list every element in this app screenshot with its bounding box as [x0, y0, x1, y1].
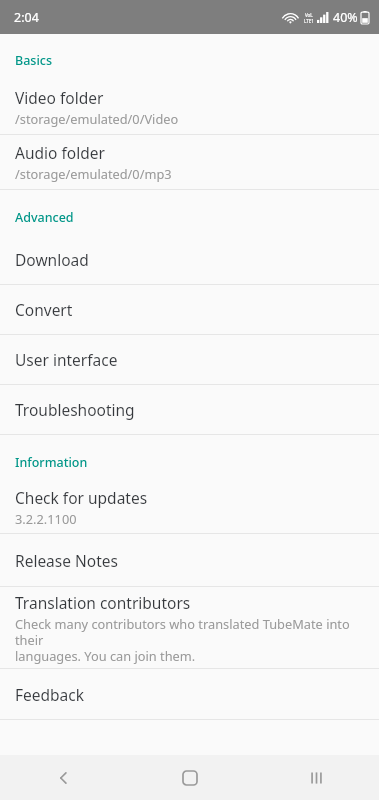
staticText: /storage/emulated/0/mp3 — [15, 165, 172, 182]
button[interactable]: Home — [127, 755, 253, 800]
staticText: Information — [15, 454, 88, 471]
button[interactable]: Back — [0, 755, 127, 800]
button[interactable]: Video folder — [0, 79, 379, 134]
staticText: Video folder — [15, 87, 104, 108]
staticText: Audio folder — [15, 142, 105, 163]
staticText: VoL — [305, 12, 313, 18]
staticText: Convert — [15, 299, 73, 320]
staticText: Release Notes — [15, 550, 118, 571]
button[interactable]: Convert — [0, 285, 379, 334]
button[interactable]: Check for updates — [0, 480, 379, 533]
staticText: Feedback — [15, 684, 85, 705]
button[interactable]: Translation contributors — [0, 587, 379, 668]
staticText: 2:04 — [14, 9, 39, 26]
staticText: Check many contributors who translated T… — [15, 615, 365, 664]
staticText: Advanced — [15, 209, 74, 226]
staticText: Translation contributors — [15, 592, 191, 613]
staticText: Troubleshooting — [15, 399, 135, 420]
staticText: Download — [15, 249, 89, 270]
staticText: LTE1 — [304, 18, 314, 24]
button[interactable]: Troubleshooting — [0, 385, 379, 434]
staticText: Check for updates — [15, 487, 148, 508]
button[interactable]: Release Notes — [0, 534, 379, 586]
button[interactable]: Audio folder — [0, 135, 379, 189]
button[interactable]: Feedback — [0, 669, 379, 719]
button[interactable]: Download — [0, 235, 379, 284]
staticText: /storage/emulated/0/Video — [15, 110, 179, 127]
staticText: User interface — [15, 349, 118, 370]
staticText: 3.2.2.1100 — [15, 510, 77, 527]
button[interactable]: Recent apps — [253, 755, 379, 800]
staticText: 40% — [333, 9, 358, 26]
staticText: Basics — [15, 52, 52, 69]
button[interactable]: User interface — [0, 335, 379, 384]
